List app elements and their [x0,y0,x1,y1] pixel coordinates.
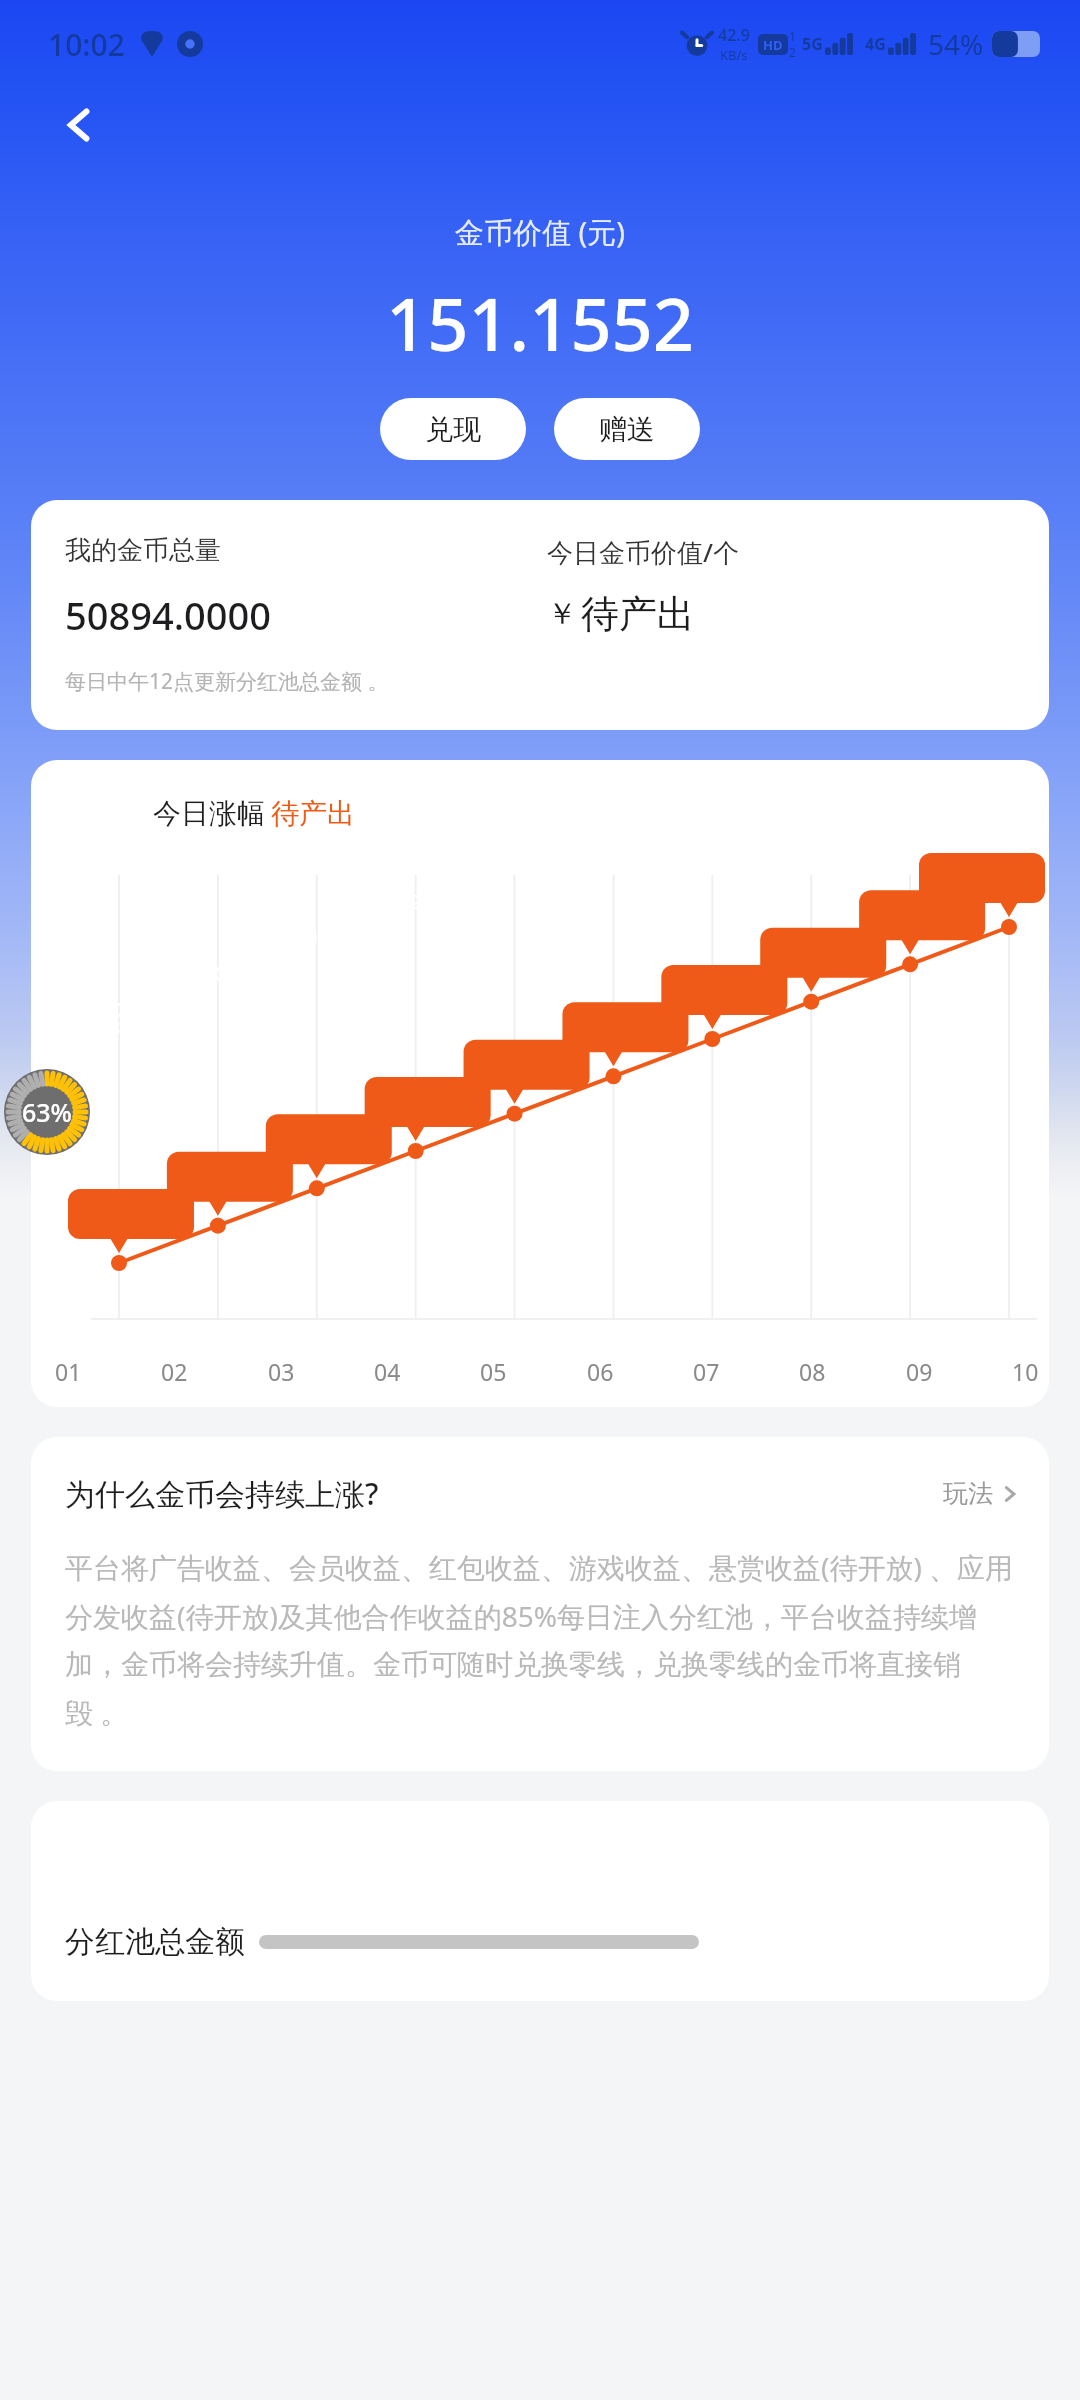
staticText: 09 [906,1356,933,1387]
staticText: 03 [268,1356,295,1387]
staticText: 05 [480,1356,507,1387]
staticText: HD [763,36,783,54]
staticText: 今日金币价值/个 [547,534,740,570]
staticText: 我的金币总量 [65,534,221,567]
staticText: 金币价值 (元) [455,212,625,252]
staticText: 5G [802,33,823,55]
staticText: ￥ [547,595,577,633]
staticText: 08 [799,1356,826,1387]
staticText: 151.1552 [386,274,694,372]
staticText: 50894.0000 [65,589,271,641]
staticText: 54% [928,25,984,63]
staticText: 2 [789,44,796,60]
staticText: 10 [1012,1356,1039,1387]
staticText: 待产出 [271,796,355,831]
staticText: 02 [161,1356,188,1387]
staticText: 今日涨幅 [153,796,265,831]
staticText: 01 [55,1356,82,1387]
staticText: 04 [374,1356,401,1387]
staticText: 63% [22,1095,72,1129]
staticText: 为什么金币会持续上涨? [65,1473,379,1514]
staticText: KB/s [720,46,748,64]
staticText: 待产出 [581,590,695,638]
staticText: 每日中午12点更新分红池总金额 。 [65,667,389,696]
button[interactable]: 赠送 [554,398,700,460]
staticText: 42.9 [718,24,750,46]
button[interactable]: 兑现 [380,398,526,460]
button[interactable]: Back [42,88,116,162]
staticText: 4G [865,33,886,55]
staticText: 1 [789,28,796,44]
staticText: 平台将广告收益、会员收益、红包收益、游戏收益、悬赏收益(待开放) 、应用分发收益… [65,1548,1017,1731]
staticText: 兑现 [425,412,481,447]
staticText: 10:02 [48,24,125,65]
staticText: 分红池总金额 [65,1923,245,1961]
staticText: 玩法 [943,1478,993,1509]
staticText: 07 [693,1356,720,1387]
staticText: 06 [587,1356,614,1387]
staticText: 赠送 [599,412,655,447]
button[interactable]: 玩法 [943,1478,1019,1509]
